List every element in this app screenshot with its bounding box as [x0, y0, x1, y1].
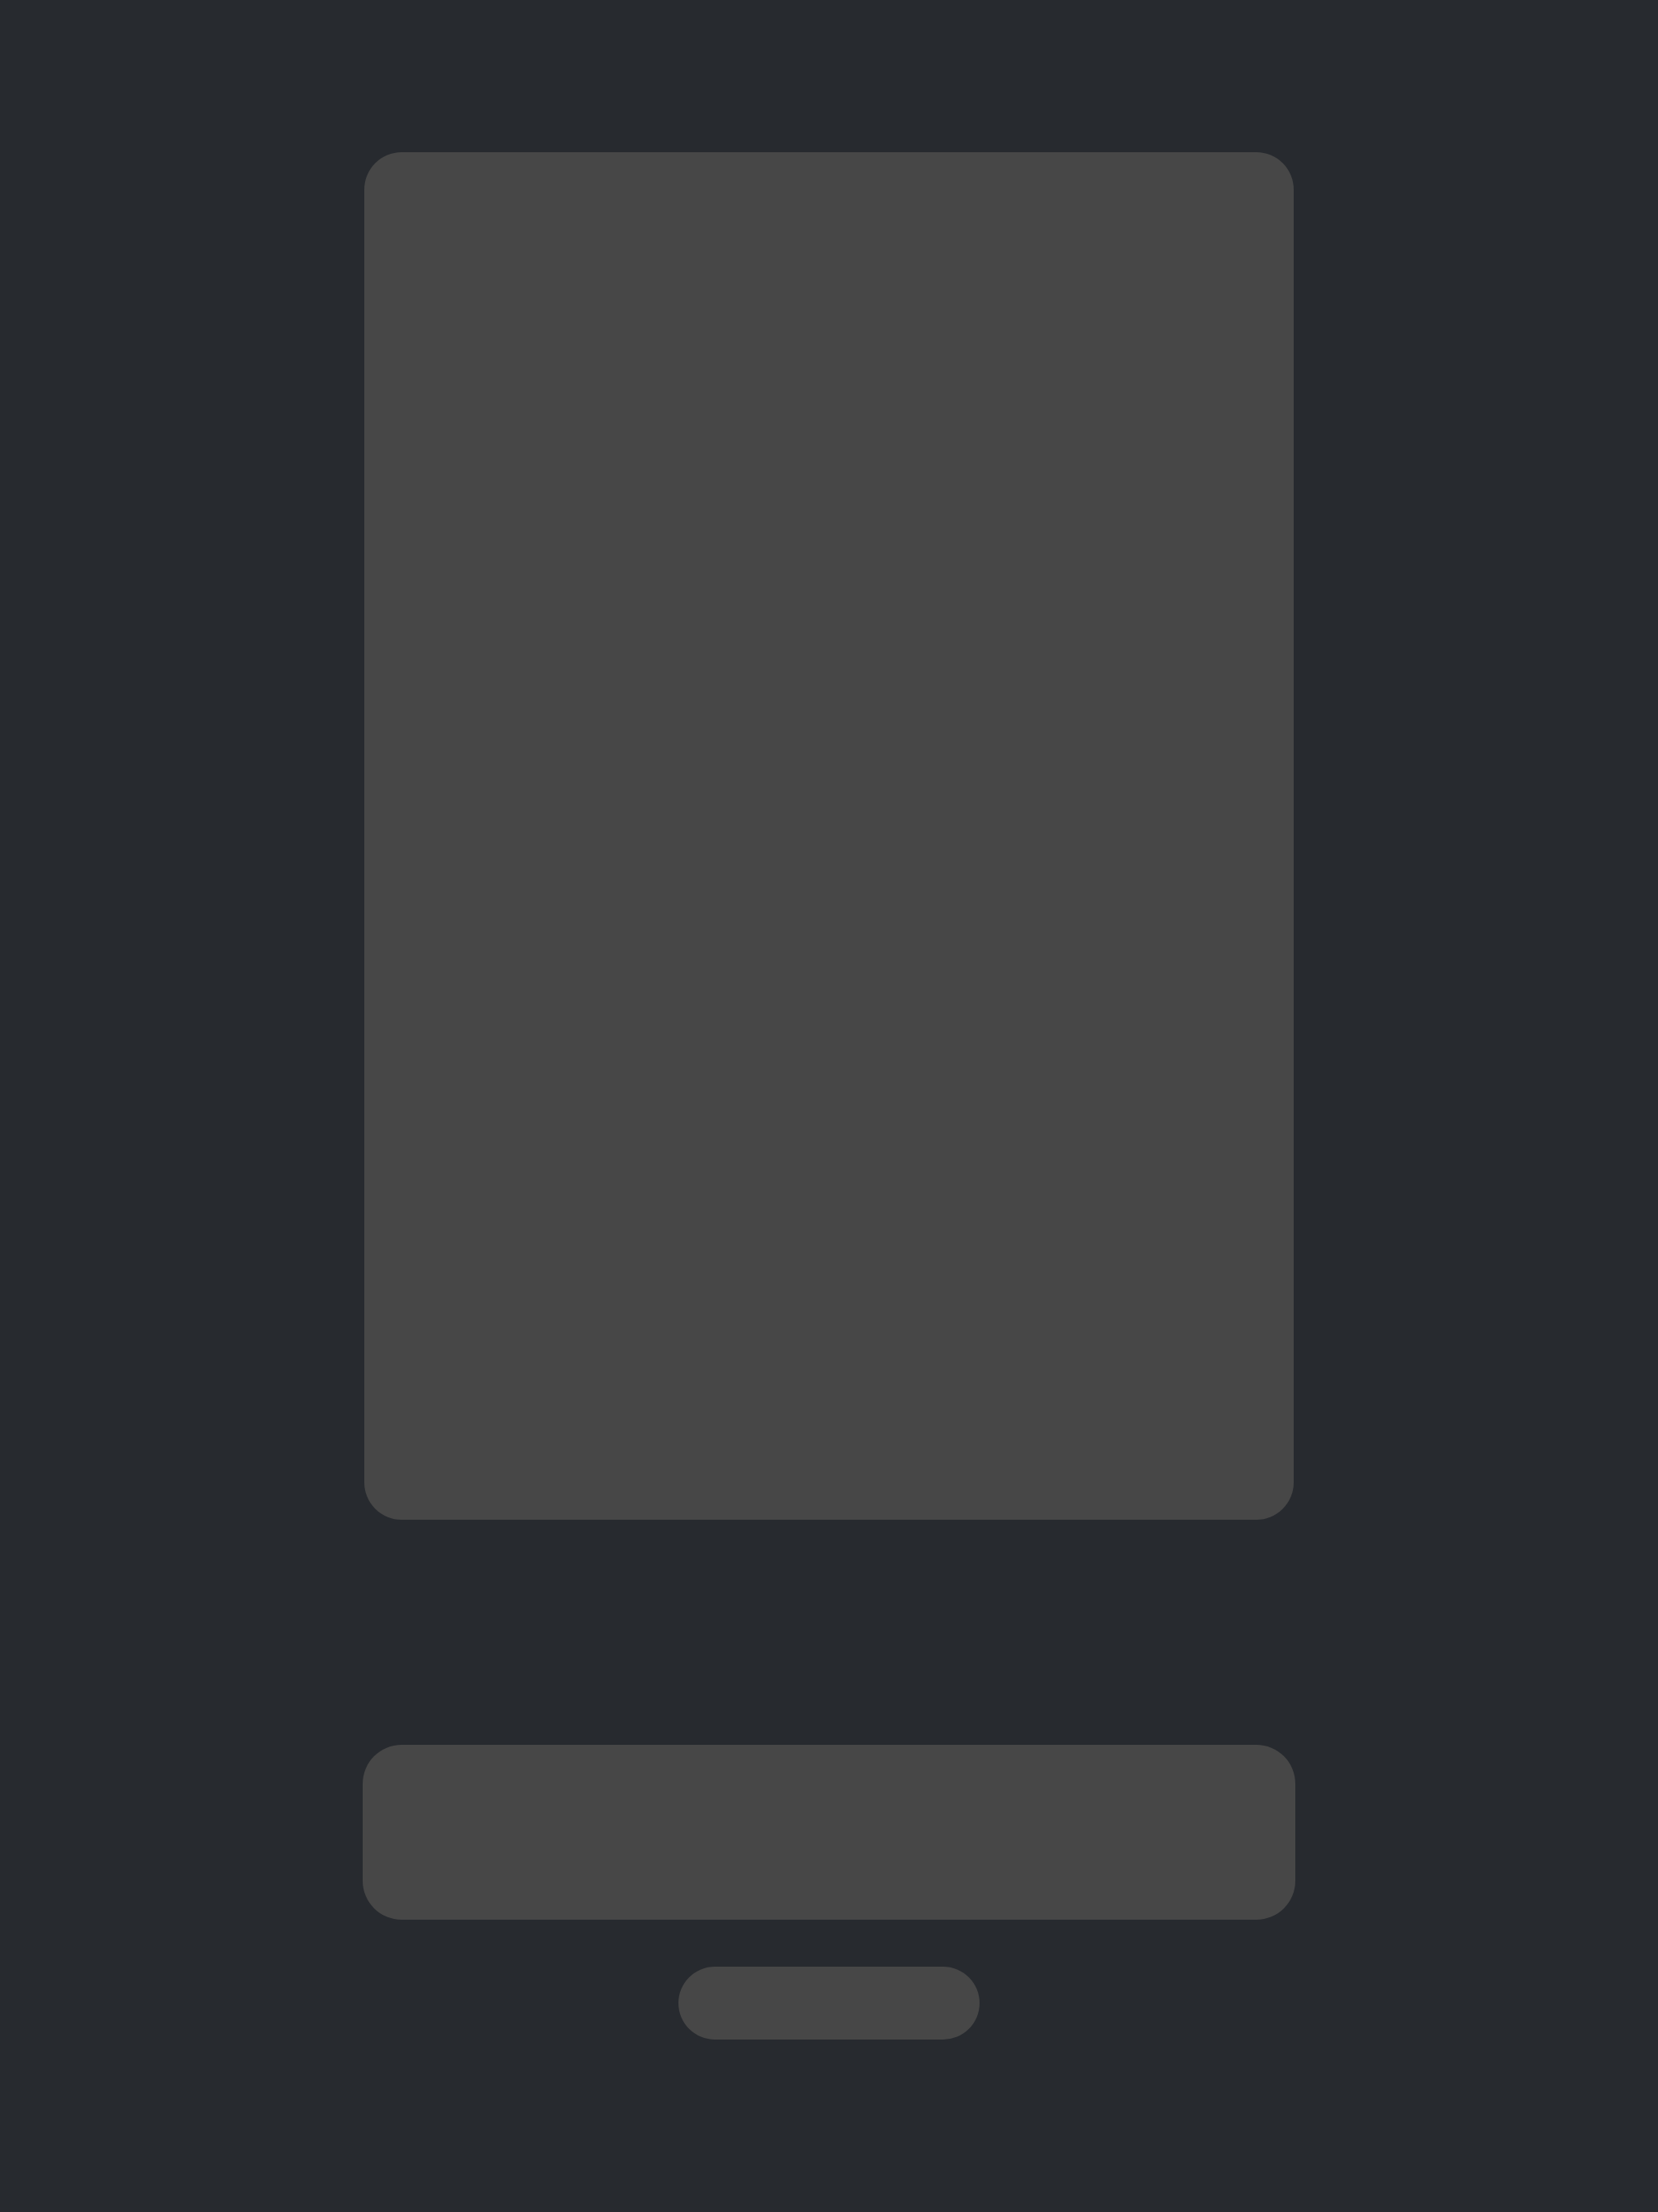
button[interactable]: Secondary action	[678, 1967, 980, 2040]
